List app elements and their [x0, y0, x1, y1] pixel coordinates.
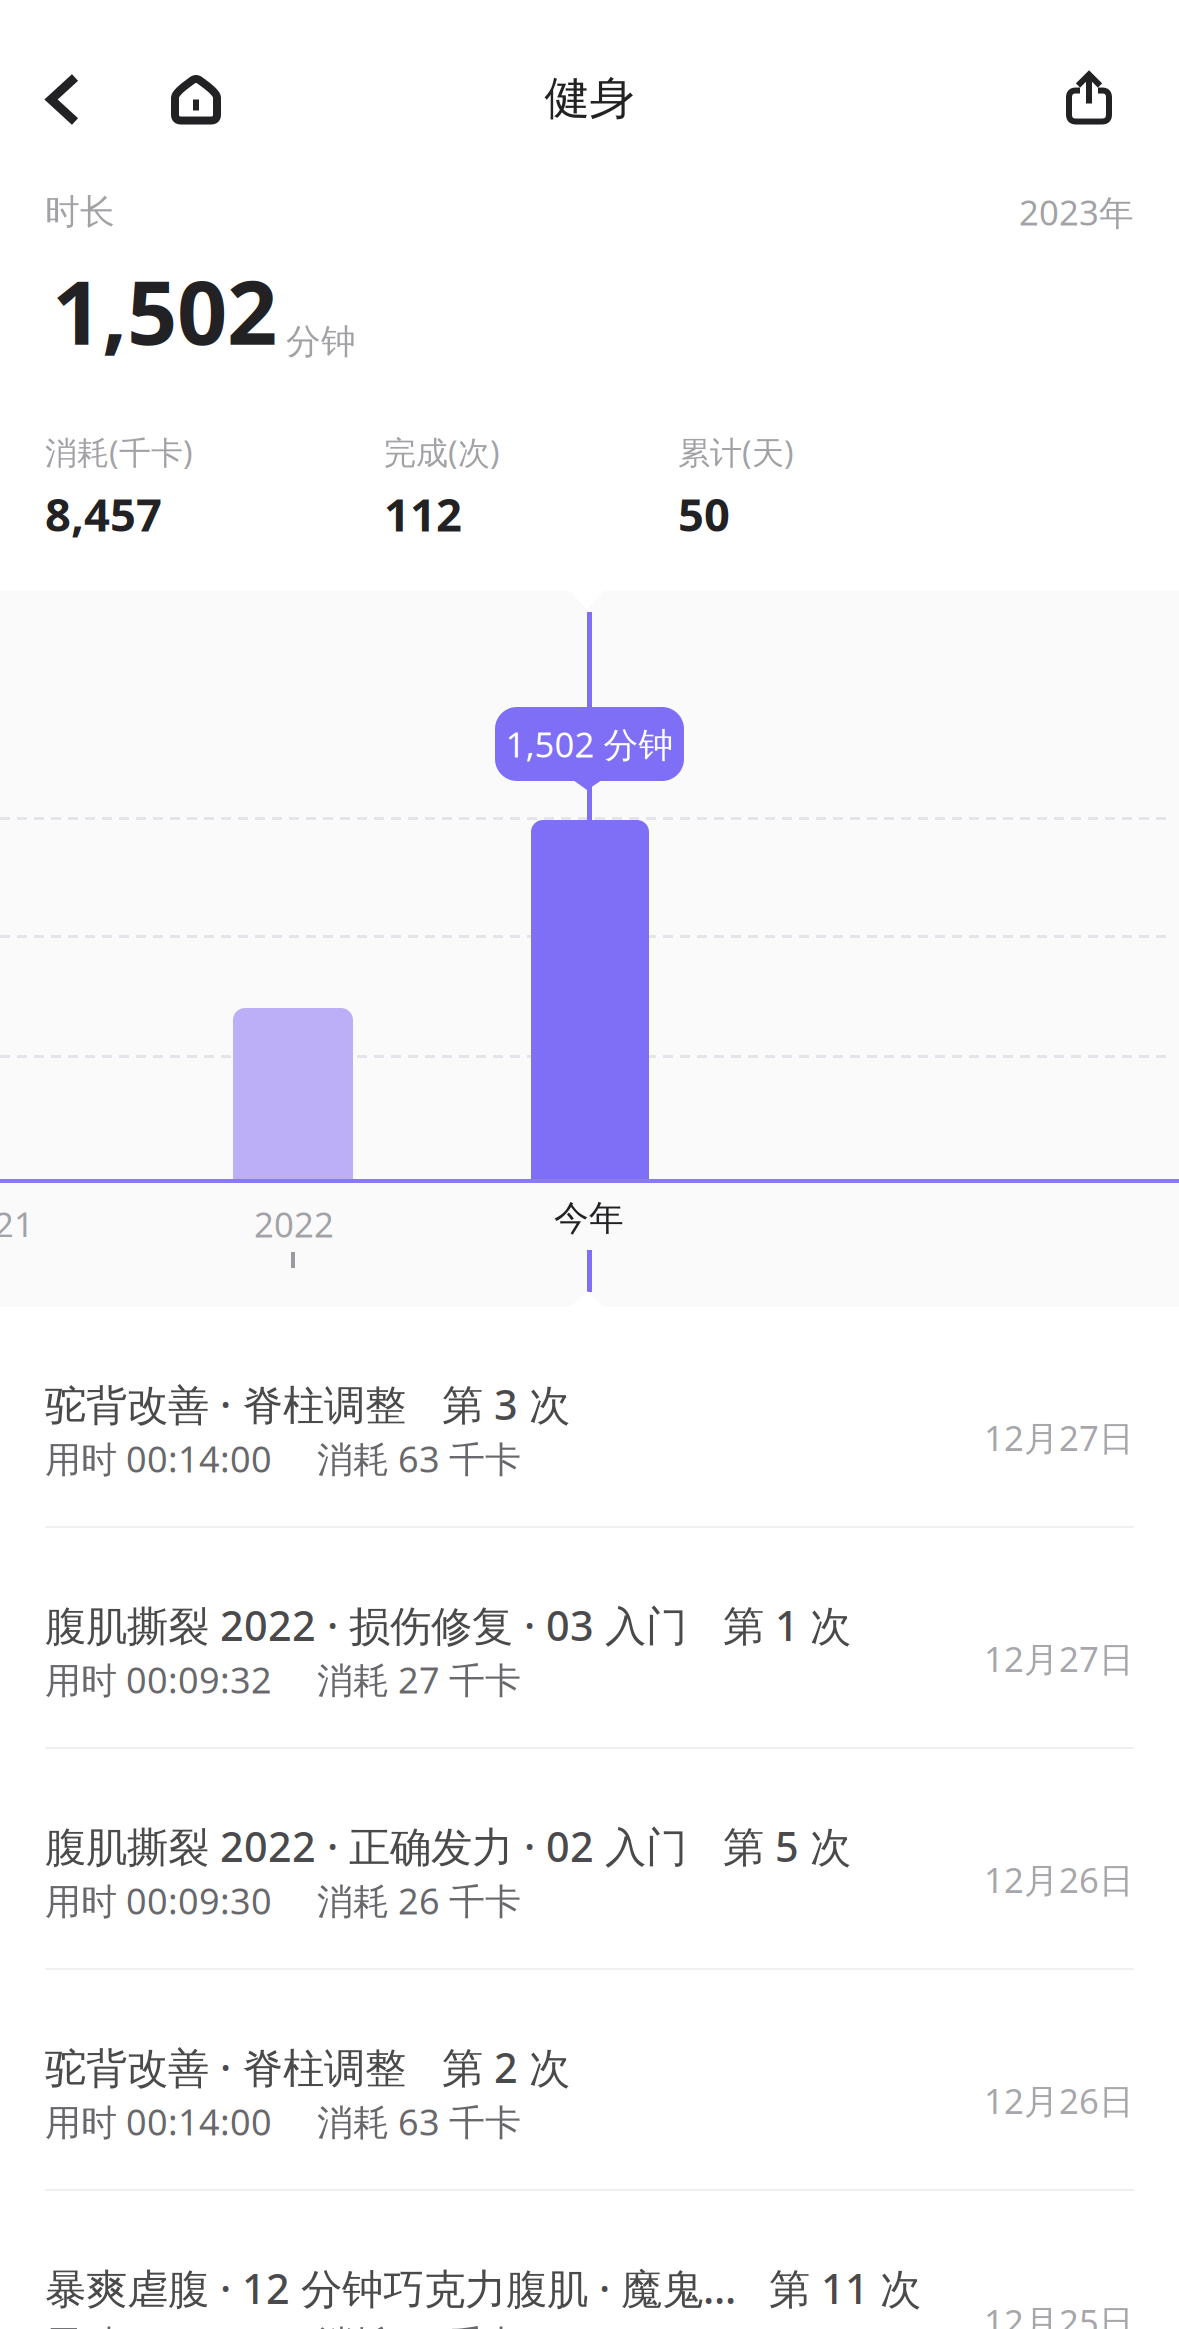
staticText: 12月27日 [984, 1635, 1134, 1681]
staticText: 用时 00:14:00 消耗 63 千卡 [45, 2098, 521, 2145]
staticText: 12月25日 [984, 2298, 1134, 2329]
button[interactable]: 腹肌撕裂 2022 · 正确发力 · 02 入门 第 5 次 [0, 1749, 1179, 1970]
staticText: 12月26日 [984, 2077, 1134, 2123]
button[interactable]: 腹肌撕裂 2022 · 损伤修复 · 03 入门 第 1 次 [0, 1528, 1179, 1749]
staticText: 完成(次) [384, 431, 500, 473]
staticText: 50 [678, 484, 730, 544]
staticText: 2022 [254, 1201, 334, 1247]
staticText: 用时 00:09:32 消耗 27 千卡 [45, 1656, 521, 1703]
staticText: 用时 00:14:00 消耗 63 千卡 [45, 1435, 521, 1482]
staticText: 今年 [554, 1197, 624, 1240]
staticText: 分钟 [286, 320, 356, 363]
button[interactable]: Share [1035, 45, 1179, 145]
staticText: 21 [0, 1201, 34, 1247]
staticText: 驼背改善 · 脊柱调整 第 2 次 [45, 2040, 570, 2094]
staticText: 1,502 分钟 [505, 721, 673, 767]
staticText: 12月26日 [984, 1856, 1134, 1902]
button[interactable]: 驼背改善 · 脊柱调整 第 2 次 [0, 1970, 1179, 2191]
staticText: 腹肌撕裂 2022 · 损伤修复 · 03 入门 第 1 次 [45, 1598, 851, 1652]
button[interactable]: 暴爽虐腹 · 12 分钟巧克力腹肌 · 魔鬼... 第 11 次 [0, 2191, 1179, 2329]
button[interactable]: 驼背改善 · 脊柱调整 第 3 次 [0, 1307, 1179, 1528]
button[interactable]: Home [143, 47, 249, 143]
staticText: 暴爽虐腹 · 12 分钟巧克力腹肌 · 魔鬼... 第 11 次 [45, 2261, 921, 2315]
staticText: 健身 [544, 71, 634, 126]
staticText: 2023年 [1019, 189, 1134, 235]
staticText: 用时 00:09:30 消耗 26 千卡 [45, 1877, 521, 1924]
staticText: 112 [384, 484, 462, 544]
staticText: 时长 [45, 191, 115, 233]
staticText: 驼背改善 · 脊柱调整 第 3 次 [45, 1377, 570, 1431]
button[interactable]: Back [0, 47, 143, 143]
staticText: 8,457 [45, 484, 162, 544]
staticText: 消耗(千卡) [45, 431, 193, 473]
staticText: 12月27日 [984, 1414, 1134, 1460]
staticText: 累计(天) [678, 431, 794, 473]
staticText: 1,502 [52, 252, 277, 369]
staticText: 腹肌撕裂 2022 · 正确发力 · 02 入门 第 5 次 [45, 1819, 851, 1873]
staticText: 用时 00:12:00 消耗 50 千卡 [45, 2319, 521, 2329]
